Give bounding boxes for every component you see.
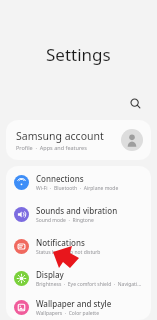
staticText: Samsung account	[16, 129, 104, 143]
button[interactable]: Wallpaper and style	[6, 294, 151, 320]
button[interactable]: Sounds and vibration	[6, 198, 151, 230]
staticText: Sound mode · Ringtone	[36, 217, 94, 224]
button[interactable]: Connections	[6, 166, 151, 198]
staticText: Sounds and vibration	[36, 205, 118, 216]
staticText: Status bar · Do not disturb	[36, 249, 101, 256]
staticText: Settings	[46, 43, 111, 66]
button[interactable]: Display	[6, 262, 151, 294]
button[interactable]: Notifications	[6, 230, 151, 262]
staticText: Wi-Fi · Bluetooth · Airplane mode	[36, 185, 119, 192]
staticText: Notifications	[36, 237, 85, 248]
staticText: Profile · Apps and features	[16, 144, 87, 151]
staticText: Wallpaper and style	[36, 298, 112, 309]
button[interactable]: Samsung account	[6, 120, 151, 160]
staticText: Connections	[36, 173, 84, 184]
button[interactable]: Search	[125, 93, 145, 113]
staticText: Wallpapers · Color palette	[36, 310, 99, 317]
staticText: Display	[36, 269, 64, 280]
staticText: Brightness · Eye comfort shield · Naviga…	[36, 281, 143, 288]
